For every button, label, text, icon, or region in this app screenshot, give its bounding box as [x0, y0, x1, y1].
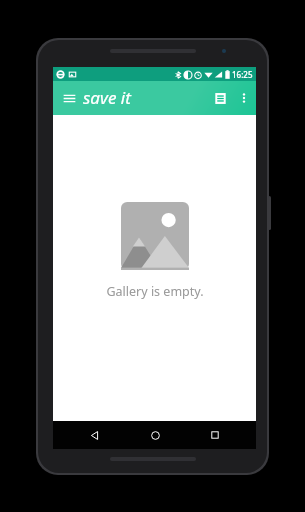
button[interactable]: Home	[135, 421, 175, 449]
button[interactable]: Recent apps	[195, 421, 235, 449]
button[interactable]: Back	[74, 421, 114, 449]
button[interactable]: Notes list	[207, 85, 233, 111]
button[interactable]: Open navigation drawer	[57, 86, 81, 110]
staticText: 16:25	[232, 69, 253, 80]
button[interactable]: More options	[233, 87, 255, 109]
staticText: Gallery is empty.	[106, 283, 204, 300]
staticText: save it	[83, 86, 131, 109]
